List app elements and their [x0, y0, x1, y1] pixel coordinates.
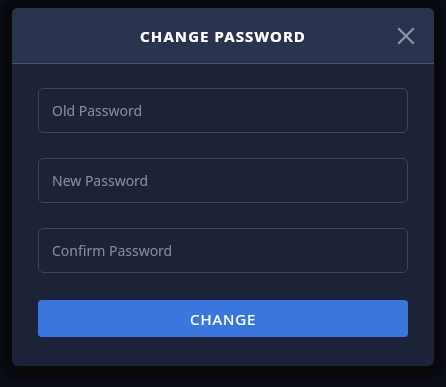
staticText: Old Password [52, 101, 143, 120]
button[interactable]: Old Password [38, 88, 408, 133]
staticText: Confirm Password [52, 241, 173, 260]
staticText: CHANGE [190, 309, 257, 329]
staticText: New Password [52, 171, 149, 190]
button[interactable]: New Password [38, 158, 408, 203]
button[interactable]: CHANGE [38, 300, 408, 337]
button[interactable]: Close [389, 19, 423, 53]
button[interactable]: Confirm Password [38, 228, 408, 273]
staticText: CHANGE PASSWORD [12, 26, 434, 46]
